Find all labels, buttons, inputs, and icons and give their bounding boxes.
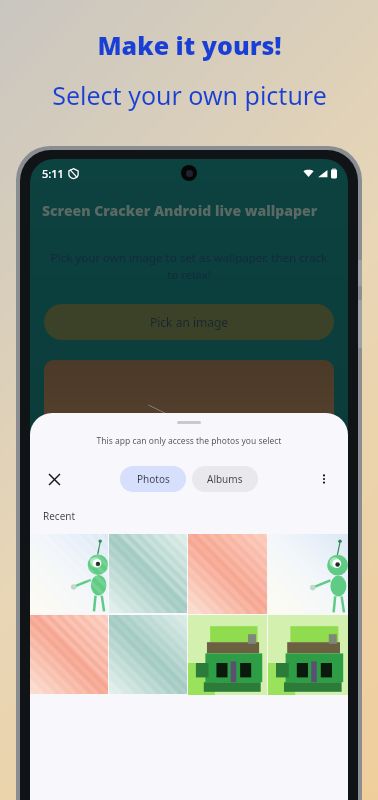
staticText: Recent [43,509,76,523]
button[interactable]: Photo 2 [109,534,187,613]
button[interactable]: Photo 5 [30,615,108,694]
button[interactable]: Photo 1 [30,534,108,613]
staticText: Pick an image [150,314,229,330]
staticText: 5:11 [42,166,64,181]
staticText: Make it yours! [97,28,282,62]
staticText: Albums [207,472,243,486]
button[interactable]: Photo 4 [268,534,348,614]
button[interactable]: Photo 6 [109,615,187,694]
button[interactable]: Close [38,463,70,495]
button[interactable]: Albums [192,466,258,492]
staticText: Select your own picture [52,78,327,112]
button[interactable]: Pick an image [44,304,334,340]
staticText: Screen Cracker Android live wallpaper [42,201,336,220]
button[interactable]: Photo 7 [188,615,267,695]
staticText: Photos [137,472,170,486]
staticText: This app can only access the photos you … [30,435,348,447]
button[interactable]: More options [308,463,340,495]
button[interactable]: Photo 8 [268,615,348,695]
button[interactable]: Photos [120,466,186,492]
button[interactable]: Photo 3 [188,534,267,614]
staticText: Pick your own image to set as wallpaper,… [50,250,328,282]
